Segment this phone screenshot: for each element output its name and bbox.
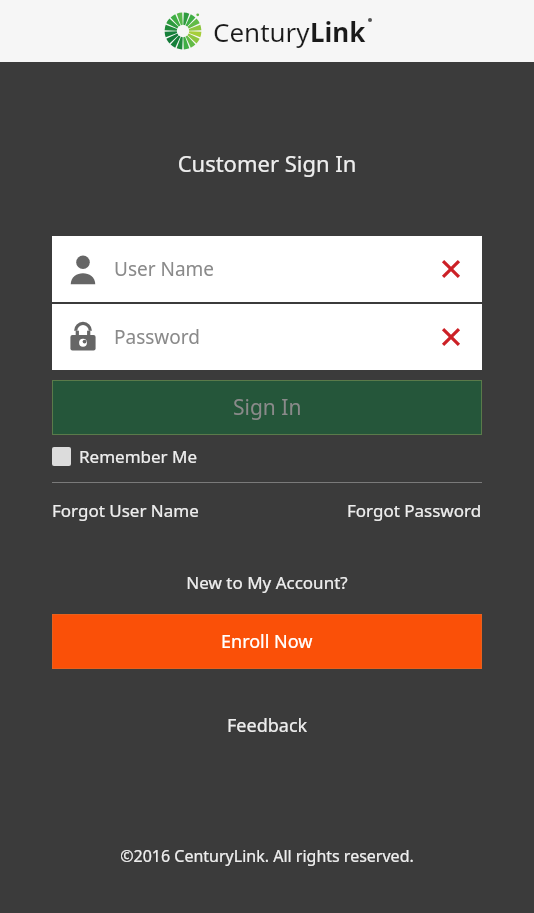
staticText: Feedback [227, 713, 308, 738]
staticText: New to My Account? [52, 571, 482, 594]
staticText: Customer Sign In [52, 148, 482, 178]
button[interactable]: Feedback [52, 713, 482, 738]
staticText: Forgot Password [347, 499, 482, 522]
button[interactable]: Forgot Password [347, 499, 482, 522]
button[interactable]: Forgot User Name [52, 499, 199, 522]
button[interactable]: Clear User Name [434, 252, 468, 286]
button[interactable]: Enroll Now [52, 614, 482, 669]
staticText: Century [213, 14, 310, 49]
button[interactable]: Clear Password [434, 320, 468, 354]
staticText: Forgot User Name [52, 499, 199, 522]
button[interactable]: Password [52, 304, 482, 370]
staticText: Link [310, 14, 366, 49]
staticText: ©2016 CenturyLink. All rights reserved. [0, 845, 534, 867]
button[interactable]: Sign In [52, 380, 482, 435]
button[interactable]: User Name [52, 236, 482, 302]
staticText: Password [114, 324, 434, 350]
staticText: Enroll Now [221, 629, 313, 654]
button[interactable]: Remember Me [52, 445, 198, 468]
staticText: User Name [114, 256, 434, 282]
staticText: Remember Me [79, 445, 198, 468]
staticText: Sign In [233, 393, 302, 422]
